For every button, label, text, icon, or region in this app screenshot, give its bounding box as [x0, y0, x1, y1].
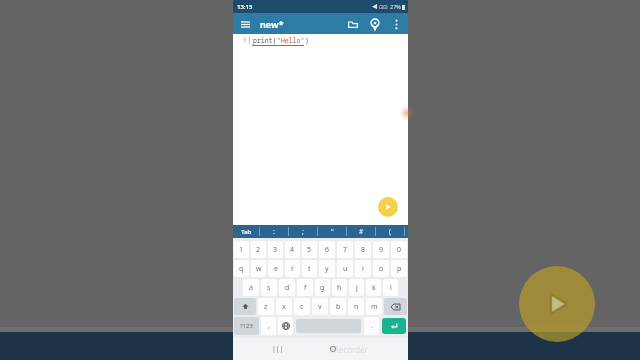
button[interactable]: e [268, 260, 283, 277]
staticText: b [336, 302, 341, 312]
staticText: ⊡⊡ [379, 4, 388, 10]
button[interactable]: p [391, 260, 407, 277]
button[interactable]: Recents [271, 342, 285, 356]
staticText: 13:15 [237, 3, 253, 11]
staticText: m [371, 302, 378, 312]
button[interactable]: g [315, 279, 330, 296]
button[interactable]: Enter [382, 318, 406, 334]
button[interactable]: Run [378, 197, 398, 217]
staticText: Tab [241, 228, 252, 236]
button[interactable]: q [234, 260, 249, 277]
staticText: ) [305, 36, 309, 45]
staticText: o [379, 264, 384, 274]
staticText: p [397, 264, 402, 274]
staticText: 1 [243, 36, 247, 44]
button[interactable]: Change language [278, 317, 293, 335]
button[interactable]: 8 [355, 241, 371, 258]
button[interactable]: Home [326, 342, 340, 356]
staticText: t [308, 264, 311, 274]
button[interactable]: f [297, 279, 313, 296]
button[interactable]: o [373, 260, 389, 277]
staticText: # [359, 227, 364, 236]
staticText: l [390, 283, 392, 293]
staticText: 5 [307, 245, 312, 255]
staticText: a [249, 283, 253, 293]
button[interactable]: " [318, 225, 346, 238]
button[interactable]: 9 [373, 241, 389, 258]
button[interactable]: # [347, 225, 375, 238]
button[interactable]: Menu [238, 17, 252, 31]
staticText: g [320, 283, 325, 293]
staticText: v [318, 302, 322, 312]
staticText: 4 [290, 245, 295, 255]
button[interactable]: Play video [519, 266, 595, 342]
staticText: y [325, 264, 329, 274]
button[interactable]: Location [367, 16, 383, 32]
staticText: s [267, 283, 271, 293]
staticText: c [300, 302, 304, 312]
button[interactable]: m [366, 298, 382, 315]
staticText: z [264, 302, 268, 312]
button[interactable]: Shift [234, 298, 256, 315]
staticText: XRecorder [329, 344, 368, 355]
staticText: . [371, 321, 373, 331]
button[interactable]: ( [376, 225, 404, 238]
button[interactable]: Backspace [384, 298, 407, 315]
button[interactable]: Tab [233, 225, 259, 238]
staticText: f [304, 283, 307, 293]
staticText: : [273, 227, 275, 236]
button[interactable]: d [279, 279, 295, 296]
staticText: h [337, 283, 342, 293]
staticText: j [356, 283, 358, 293]
button[interactable]: Open file [345, 16, 361, 32]
button[interactable]: v [312, 298, 328, 315]
button[interactable]: 6 [319, 241, 335, 258]
staticText: 0 [397, 245, 402, 255]
button[interactable]: i [355, 260, 371, 277]
staticText: q [239, 264, 244, 274]
staticText: 8 [361, 245, 366, 255]
staticText: ; [302, 227, 304, 236]
button[interactable]: r [285, 260, 300, 277]
button[interactable]: , [261, 317, 276, 335]
staticText: print( [253, 36, 277, 45]
staticText: r [291, 264, 294, 274]
button[interactable]: : [260, 225, 288, 238]
button[interactable]: j [349, 279, 364, 296]
staticText: 1 [239, 245, 244, 255]
button[interactable]: 5 [302, 241, 317, 258]
button[interactable]: w [251, 260, 266, 277]
button[interactable]: 0 [391, 241, 407, 258]
button[interactable]: h [332, 279, 347, 296]
staticText: e [274, 264, 278, 274]
button[interactable]: 7 [337, 241, 353, 258]
button[interactable]: c [294, 298, 310, 315]
staticText: ?123 [240, 322, 253, 330]
button[interactable]: y [319, 260, 335, 277]
button[interactable]: . [364, 317, 379, 335]
button[interactable]: u [337, 260, 353, 277]
button[interactable]: z [258, 298, 274, 315]
button[interactable]: x [276, 298, 292, 315]
button[interactable]: b [330, 298, 346, 315]
button[interactable]: 3 [268, 241, 283, 258]
staticText: ( [389, 227, 391, 236]
button[interactable]: s [261, 279, 277, 296]
button[interactable]: 1 [234, 241, 249, 258]
button[interactable]: 4 [285, 241, 300, 258]
button[interactable]: a [243, 279, 259, 296]
staticText: " [331, 227, 334, 236]
staticText: 3 [273, 245, 278, 255]
button[interactable]: l [383, 279, 398, 296]
button[interactable]: t [302, 260, 317, 277]
button[interactable]: 2 [251, 241, 266, 258]
button[interactable]: n [348, 298, 364, 315]
button[interactable]: k [366, 279, 381, 296]
staticText: 27% [390, 3, 401, 10]
button[interactable]: ?123 [234, 317, 259, 335]
staticText: ||| [272, 344, 284, 354]
button[interactable]: More options [389, 17, 403, 31]
button[interactable]: ; [289, 225, 317, 238]
staticText: new* [260, 18, 284, 30]
